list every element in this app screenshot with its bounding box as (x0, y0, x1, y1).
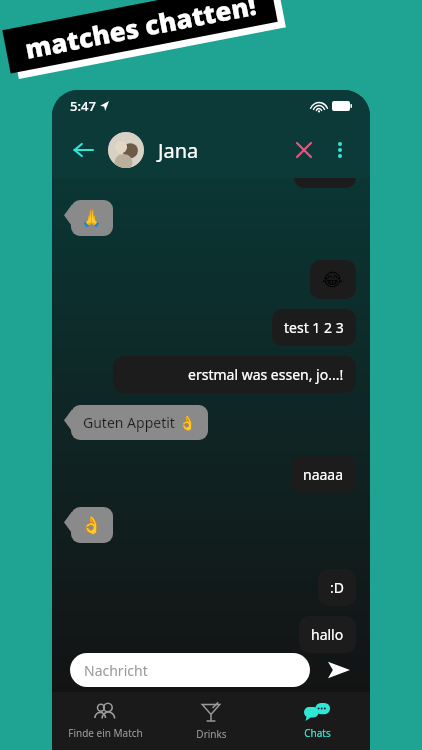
staticText: Finde ein Match (68, 726, 143, 740)
button[interactable]: Nachricht (70, 653, 310, 687)
staticText: Nachricht (84, 661, 148, 680)
staticText: 5:47 (70, 97, 96, 115)
button[interactable]: hallo (299, 616, 356, 653)
staticText: 😂 (322, 269, 344, 290)
staticText: :D (330, 578, 344, 597)
button[interactable]: Back (66, 133, 100, 167)
staticText: 🙏 (81, 208, 103, 228)
button[interactable]: Finde ein Match (52, 692, 158, 750)
staticText: Chats (304, 726, 331, 740)
staticText: Guten Appetit 👌 (83, 413, 196, 432)
staticText: naaaa (303, 465, 344, 484)
button[interactable]: naaaa (291, 456, 356, 493)
button[interactable] (294, 178, 356, 188)
staticText: hallo (311, 625, 344, 644)
staticText: Drinks (196, 727, 227, 741)
button[interactable]: 👌 (71, 507, 113, 543)
staticText: matches chatten! (22, 0, 259, 66)
button[interactable]: 😂 (310, 260, 356, 299)
button[interactable]: erstmal was essen, jo...! (113, 356, 356, 393)
staticText: 👌 (81, 515, 103, 535)
button[interactable]: 🙏 (71, 200, 113, 236)
staticText: test 1 2 3 (284, 318, 344, 337)
button[interactable]: Send (324, 655, 354, 685)
button[interactable]: :D (318, 569, 356, 606)
staticText: erstmal was essen, jo...! (188, 365, 344, 384)
button[interactable]: Chats (264, 692, 370, 750)
button[interactable]: test 1 2 3 (272, 309, 356, 346)
button[interactable]: Guten Appetit 👌 (71, 405, 208, 440)
button[interactable]: Close chat (288, 134, 320, 166)
button[interactable] (108, 132, 144, 168)
button[interactable]: More options (324, 134, 356, 166)
staticText: Jana (158, 137, 288, 164)
button[interactable]: Drinks (158, 692, 264, 750)
